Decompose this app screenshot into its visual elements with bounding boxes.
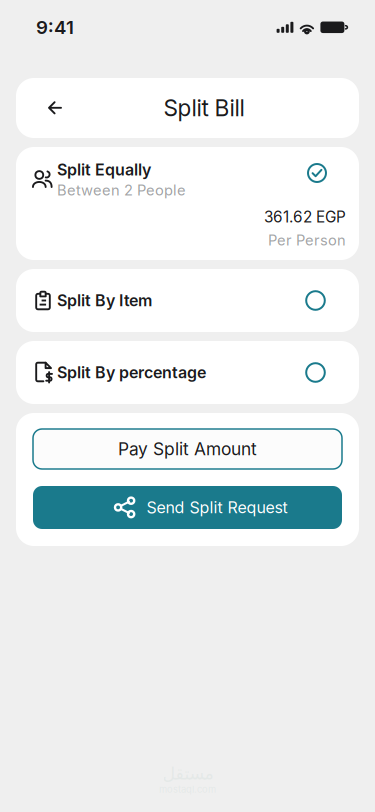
staticText: Pay Split Amount xyxy=(118,438,257,459)
staticText: 9:41 xyxy=(36,16,74,39)
button[interactable]: Split By Item xyxy=(16,269,359,332)
staticText: مستقل xyxy=(162,763,213,784)
staticText: mostaql.com xyxy=(159,784,216,795)
button[interactable]: Send Split Request xyxy=(33,486,342,529)
staticText: Split Equally xyxy=(57,160,151,179)
staticText: Send Split Request xyxy=(146,498,287,517)
button[interactable]: Back xyxy=(37,86,73,130)
staticText: Split By Item xyxy=(57,291,152,310)
staticText: Split By percentage xyxy=(57,363,206,382)
button[interactable]: Pay Split Amount xyxy=(33,429,342,469)
button[interactable]: Split By percentage xyxy=(16,341,359,404)
button[interactable]: Split Equally xyxy=(16,147,359,260)
staticText: 361.62 EGP xyxy=(264,208,346,226)
staticText: Split Bill xyxy=(163,94,244,122)
staticText: Between 2 People xyxy=(57,181,186,199)
staticText: Per Person xyxy=(268,231,346,249)
